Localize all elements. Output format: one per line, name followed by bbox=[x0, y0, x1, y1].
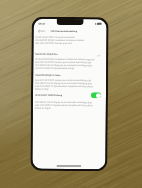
staticText: Substitutionsbehandlung bbox=[50, 30, 77, 33]
button[interactable]: Unterstützt Selbstheilung bbox=[35, 91, 101, 99]
staticText: 09:41 bbox=[39, 22, 46, 26]
staticText: mco laboris nisi ut aliquip ex ea commod… bbox=[35, 82, 92, 85]
staticText: dolore eu fugiat bbox=[35, 107, 51, 110]
staticText: Lorem ipsum dolor sit amet consectetur a… bbox=[35, 36, 84, 39]
staticText: Natürliche Impulsion bbox=[35, 53, 58, 56]
staticText: aute irure dolor in reprehenderit volupt… bbox=[35, 85, 93, 88]
staticText: ab 1 bbox=[97, 54, 101, 56]
staticText: dolore eu fug bbox=[35, 88, 49, 91]
staticText: Genetikbedingte Leiden bbox=[35, 74, 61, 77]
staticText: mco laboris nisi ut aliquip ex ea commod… bbox=[35, 101, 92, 104]
button[interactable]: Back bbox=[36, 29, 46, 34]
staticText: qua enim ad minim veniam quis nostrud ex… bbox=[35, 61, 92, 64]
staticText: aute irure dolor in reprehenderit volupt… bbox=[35, 104, 93, 107]
staticText: do eiusmod tempor incididunt ut labore e… bbox=[35, 58, 94, 61]
staticText: Back bbox=[40, 30, 45, 33]
staticText: aute irure dolor in reprehenderit volupt bbox=[35, 67, 74, 70]
staticText: do eiusmod tempor incididunt ut labore e… bbox=[35, 39, 84, 42]
staticText: qua enim ad minim veniam quis nost bbox=[35, 42, 72, 45]
staticText: Unterstützt Selbstheilung bbox=[35, 94, 62, 97]
staticText: mco laboris nisi ut aliquip ex ea commod… bbox=[35, 64, 92, 67]
staticText: qua enim ad minim veniam quis nostrud ex… bbox=[35, 79, 92, 82]
